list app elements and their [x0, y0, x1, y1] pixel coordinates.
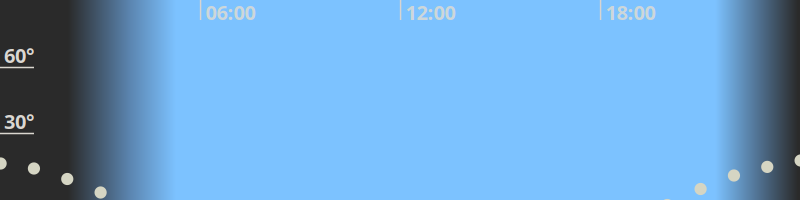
staticText: 18:00 — [605, 0, 655, 26]
button[interactable]: Hourly temperature forecast — [0, 0, 800, 200]
staticText: 06:00 — [205, 0, 255, 26]
staticText: 12:00 — [405, 0, 455, 26]
staticText: 30° — [4, 108, 34, 135]
staticText: 60° — [4, 42, 34, 69]
